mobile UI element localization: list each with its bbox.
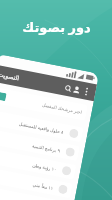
staticText: ١١ معاً نبني — [32, 181, 54, 191]
staticText: اختر مرشحك المفضل — [42, 101, 83, 115]
staticText: دور بصوتك — [22, 18, 91, 36]
button[interactable]: اختر مرشحك المفضل — [0, 87, 88, 121]
staticText: التصويت — [0, 70, 20, 82]
button[interactable]: Status icons — [0, 54, 99, 200]
button[interactable]: ١٢ صوتك أمانة — [0, 184, 69, 200]
other: Toolbar actions — [64, 83, 91, 96]
button[interactable]: ١١ معاً نبني — [0, 166, 73, 198]
button[interactable]: ١٠ رؤية وطن — [0, 147, 76, 180]
other: Status icons — [66, 69, 93, 81]
button[interactable]: ٨ حلول واقعية للمستقبل — [0, 110, 83, 142]
staticText: ٩ برنامج التنمية — [32, 142, 61, 154]
staticText: ١٠ رؤية وطن — [32, 162, 58, 172]
staticText: ٨ حلول واقعية للمستقبل — [19, 120, 65, 135]
button[interactable]: ٩ برنامج التنمية — [0, 128, 80, 161]
button[interactable]: التصويت — [0, 66, 92, 100]
